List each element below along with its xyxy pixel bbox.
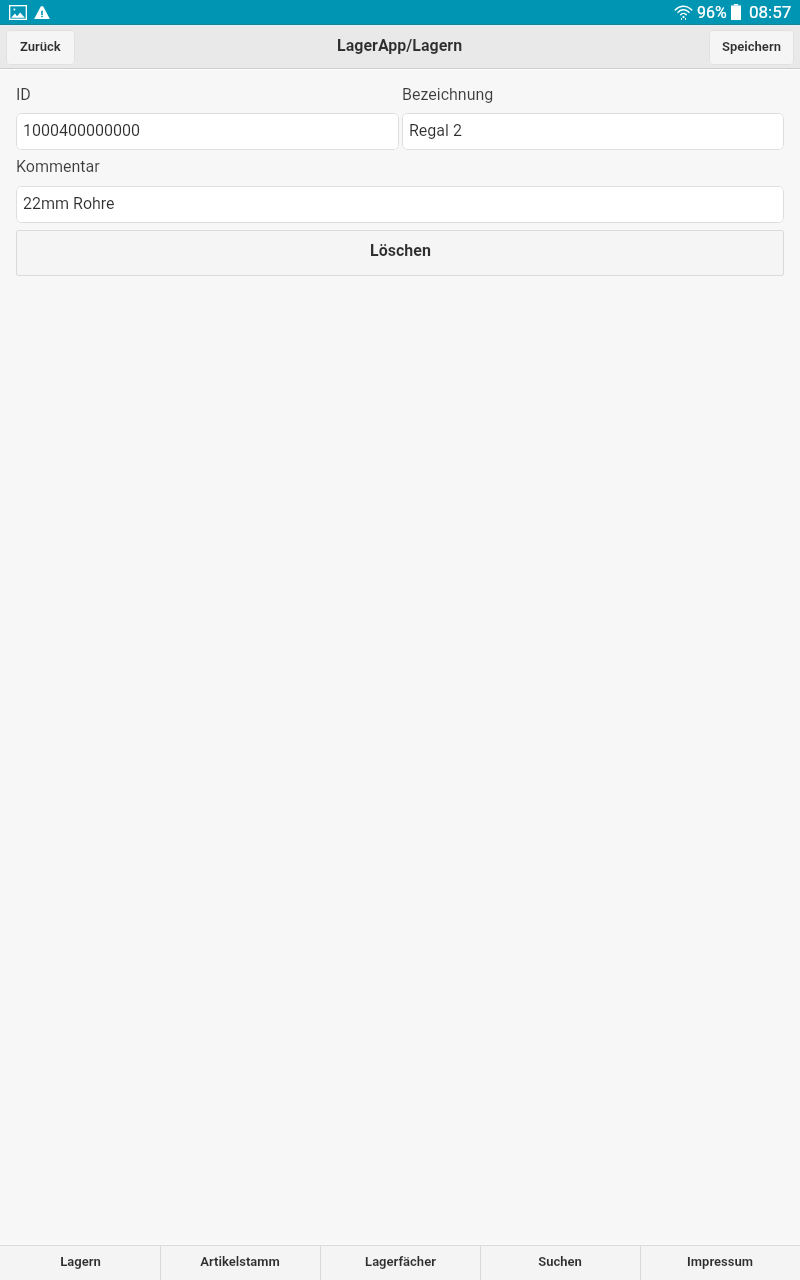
staticText: 22mm Rohre [23,194,115,213]
button[interactable]: Impressum [640,1246,800,1280]
staticText: Speichern [722,39,781,54]
staticText: ID [16,85,31,104]
button[interactable]: Regal 2 [402,113,784,150]
staticText: LagerApp/Lagern [337,36,463,55]
staticText: 08:57 [749,2,792,22]
button[interactable]: 1000400000000 [16,113,399,150]
other: Battery 96 percent [731,4,741,20]
button[interactable]: Suchen [480,1246,640,1280]
staticText: Lagern [60,1254,101,1269]
staticText: Suchen [538,1254,582,1269]
other: Wi-Fi connected [675,5,692,20]
button[interactable]: Zurück [6,30,75,65]
staticText: Zurück [20,39,61,54]
button[interactable]: Artikelstamm [160,1246,320,1280]
staticText: Kommentar [16,157,100,176]
staticText: Bezeichnung [402,85,494,104]
staticText: Löschen [370,241,431,260]
button[interactable]: Lagerfächer [320,1246,480,1280]
staticText: 1000400000000 [23,121,140,140]
button[interactable]: Lagern [0,1246,160,1280]
button[interactable]: Speichern [709,30,794,65]
staticText: Regal 2 [409,121,462,140]
other: Warning [34,5,50,20]
button[interactable]: Löschen [16,230,784,276]
staticText: Impressum [687,1254,753,1269]
button[interactable]: 22mm Rohre [16,186,784,223]
staticText: 96% [697,3,727,22]
staticText: Lagerfächer [365,1254,436,1269]
staticText: Artikelstamm [200,1254,280,1269]
other: Screenshot captured [9,5,27,20]
